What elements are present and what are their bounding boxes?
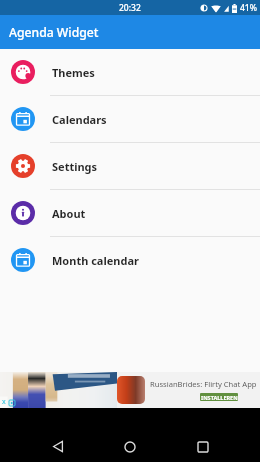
staticText: RussianBrides: Flirty Chat App	[150, 379, 257, 389]
button[interactable]: Settings	[0, 143, 260, 189]
button[interactable]: Home	[112, 431, 148, 462]
staticText: Settings	[52, 159, 98, 174]
button[interactable]: x	[0, 372, 260, 408]
button[interactable]: Back	[40, 431, 76, 462]
staticText: INSTALLEREN	[201, 394, 238, 401]
button[interactable]: Month calendar	[0, 237, 260, 283]
staticText: Calendars	[52, 112, 107, 127]
staticText: Month calendar	[52, 253, 139, 268]
staticText: 41%	[240, 2, 257, 14]
button[interactable]: Calendars	[0, 96, 260, 142]
button[interactable]: INSTALLEREN	[200, 393, 238, 401]
button[interactable]: Themes	[0, 49, 260, 95]
staticText: x	[2, 397, 6, 407]
button[interactable]: Recents	[185, 431, 221, 462]
staticText: About	[52, 206, 86, 221]
staticText: 20:32	[119, 2, 141, 14]
button[interactable]: About	[0, 190, 260, 236]
staticText: Themes	[52, 65, 95, 80]
staticText: Agenda Widget	[9, 24, 99, 41]
